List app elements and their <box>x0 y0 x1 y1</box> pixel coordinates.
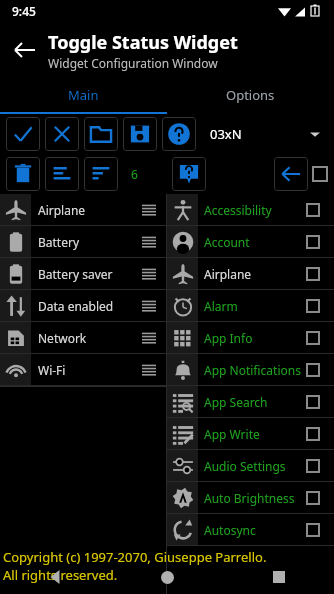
staticText: Autosync <box>204 522 256 538</box>
button[interactable]: Alarm <box>167 290 334 322</box>
button[interactable]: Select all <box>312 166 328 182</box>
button[interactable]: App Info <box>167 322 334 354</box>
staticText: App Write <box>204 426 260 442</box>
staticText: Account <box>204 234 250 250</box>
staticText: 03xN <box>210 125 242 143</box>
staticText: Audio Settings <box>204 458 286 474</box>
staticText: Battery <box>38 234 80 250</box>
other: Home <box>161 571 174 584</box>
staticText: Wi-Fi <box>38 362 66 378</box>
staticText: App Notifications <box>204 362 301 378</box>
staticText: Copyright (c) 1997-2070, Giuseppe Parrel… <box>3 548 267 566</box>
button[interactable]: Audio Settings <box>167 450 334 482</box>
button[interactable]: Back <box>0 26 48 74</box>
button[interactable]: 03xN <box>210 114 328 154</box>
button[interactable]: Wi-Fi <box>0 354 166 386</box>
staticText: 9:45 <box>12 3 36 19</box>
button[interactable]: App Search <box>167 386 334 418</box>
button[interactable]: Confirm <box>6 117 40 151</box>
button[interactable]: Save <box>123 117 157 151</box>
button[interactable]: Sort ascending <box>45 157 79 191</box>
button[interactable]: Sort descending <box>84 157 118 191</box>
staticText: App Info <box>204 330 253 346</box>
staticText: Network <box>38 330 87 346</box>
staticText: Airplane <box>38 202 86 218</box>
button[interactable]: Data enabled <box>0 290 166 322</box>
button[interactable]: Account <box>167 226 334 258</box>
staticText: Accessibility <box>204 202 272 218</box>
staticText: All rights reserved. <box>3 566 118 584</box>
button[interactable]: Delete <box>6 157 40 191</box>
button[interactable]: Move left <box>274 157 308 191</box>
staticText: Airplane <box>204 266 252 282</box>
button[interactable]: App Write <box>167 418 334 450</box>
staticText: Data enabled <box>38 298 114 314</box>
staticText: Alarm <box>204 298 238 314</box>
staticText: Toggle Status Widget <box>48 30 238 55</box>
button[interactable]: Airplane <box>167 258 334 290</box>
button[interactable]: Airplane <box>0 194 166 226</box>
button[interactable]: Battery saver <box>0 258 166 290</box>
button[interactable]: Accessibility <box>167 194 334 226</box>
staticText: App Search <box>204 394 268 410</box>
button[interactable]: Help <box>162 117 196 151</box>
button[interactable]: Auto Brightness <box>167 482 334 514</box>
button[interactable]: Options <box>167 78 334 112</box>
button[interactable]: Cancel <box>45 117 79 151</box>
button[interactable]: App Notifications <box>167 354 334 386</box>
button[interactable]: Autosync <box>167 514 334 546</box>
button[interactable]: Network <box>0 322 166 354</box>
staticText: 6 <box>131 166 138 182</box>
button[interactable]: Info <box>172 157 206 191</box>
staticText: Main <box>68 86 99 104</box>
button[interactable]: Main <box>0 78 167 112</box>
button[interactable]: Open <box>84 117 118 151</box>
staticText: Options <box>226 86 275 104</box>
staticText: Battery saver <box>38 266 113 282</box>
other: Back <box>49 570 63 584</box>
staticText: Widget Configuration Window <box>48 55 218 71</box>
staticText: Auto Brightness <box>204 490 295 506</box>
button[interactable]: Battery <box>0 226 166 258</box>
